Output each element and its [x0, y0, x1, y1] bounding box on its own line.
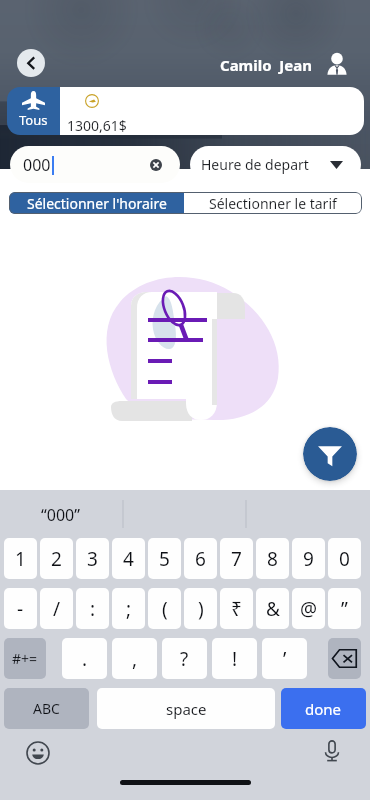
- button[interactable]: 8: [256, 538, 289, 579]
- staticText: ₹: [231, 596, 242, 622]
- staticText: /: [53, 596, 61, 622]
- button[interactable]: :: [76, 588, 109, 629]
- button[interactable]: 4: [112, 538, 145, 579]
- staticText: (: [162, 596, 168, 622]
- staticText: done: [305, 699, 342, 719]
- staticText: Camilo Jean: [220, 55, 313, 75]
- staticText: “000”: [41, 504, 80, 526]
- staticText: .: [82, 646, 88, 672]
- button[interactable]: 7: [220, 538, 253, 579]
- button[interactable]: Tous: [7, 87, 60, 135]
- button[interactable]: #+=: [4, 638, 46, 679]
- staticText: 8: [267, 546, 278, 572]
- staticText: space: [166, 699, 207, 719]
- button[interactable]: /: [40, 588, 73, 629]
- button[interactable]: Heure de depart: [190, 146, 361, 183]
- staticText: 000: [23, 154, 51, 176]
- staticText: 6: [195, 546, 206, 572]
- staticText: 3: [87, 546, 98, 572]
- staticText: &: [266, 596, 280, 622]
- button[interactable]: Sélectionner l'horaire: [9, 192, 184, 214]
- staticText: ,: [132, 646, 138, 672]
- button[interactable]: 5: [148, 538, 181, 579]
- button[interactable]: space: [97, 688, 275, 729]
- button[interactable]: !: [212, 638, 257, 679]
- staticText: 1: [15, 546, 26, 572]
- button[interactable]: Profile: [327, 52, 347, 75]
- staticText: Heure de depart: [201, 155, 309, 174]
- button[interactable]: 000: [10, 146, 180, 183]
- button[interactable]: &: [256, 588, 289, 629]
- staticText: ): [198, 596, 204, 622]
- button[interactable]: 9: [292, 538, 325, 579]
- button[interactable]: 0: [328, 538, 361, 579]
- button[interactable]: .: [62, 638, 107, 679]
- staticText: 5: [159, 546, 170, 572]
- button[interactable]: ;: [112, 588, 145, 629]
- button[interactable]: ”: [328, 588, 361, 629]
- staticText: 9: [303, 546, 314, 572]
- staticText: Tous: [19, 111, 48, 129]
- staticText: Sélectionner l'horaire: [27, 194, 167, 213]
- staticText: !: [232, 646, 238, 672]
- button[interactable]: ): [184, 588, 217, 629]
- button[interactable]: ’: [262, 638, 307, 679]
- button[interactable]: 3: [76, 538, 109, 579]
- button[interactable]: ?: [162, 638, 207, 679]
- button[interactable]: -: [4, 588, 37, 629]
- button[interactable]: @: [292, 588, 325, 629]
- button[interactable]: ₹: [220, 588, 253, 629]
- staticText: -: [17, 596, 24, 622]
- button[interactable]: done: [281, 688, 366, 729]
- button[interactable]: Filter: [303, 427, 357, 481]
- staticText: 7: [231, 546, 242, 572]
- staticText: 4: [123, 546, 134, 572]
- button[interactable]: 1300,61$: [60, 87, 364, 135]
- button[interactable]: ABC: [4, 688, 89, 729]
- button[interactable]: Back: [17, 49, 45, 77]
- staticText: Sélectionner le tarif: [209, 194, 337, 213]
- staticText: ”: [341, 596, 348, 622]
- button[interactable]: (: [148, 588, 181, 629]
- button[interactable]: ,: [112, 638, 157, 679]
- staticText: ?: [180, 646, 189, 672]
- staticText: 0: [339, 546, 350, 572]
- button[interactable]: Sélectionner le tarif: [184, 192, 362, 214]
- staticText: ’: [283, 646, 287, 672]
- staticText: @: [300, 596, 318, 622]
- button[interactable]: 1: [4, 538, 37, 579]
- button[interactable]: Voice input: [320, 739, 344, 763]
- staticText: ;: [126, 596, 132, 622]
- staticText: :: [90, 596, 96, 622]
- button[interactable]: Emoji keyboard: [26, 741, 50, 765]
- staticText: #+=: [12, 649, 38, 668]
- staticText: 2: [51, 546, 62, 572]
- button[interactable]: 6: [184, 538, 217, 579]
- staticText: ABC: [33, 699, 60, 718]
- staticText: 1300,61$: [67, 116, 127, 135]
- button[interactable]: Backspace: [328, 638, 361, 679]
- button[interactable]: 2: [40, 538, 73, 579]
